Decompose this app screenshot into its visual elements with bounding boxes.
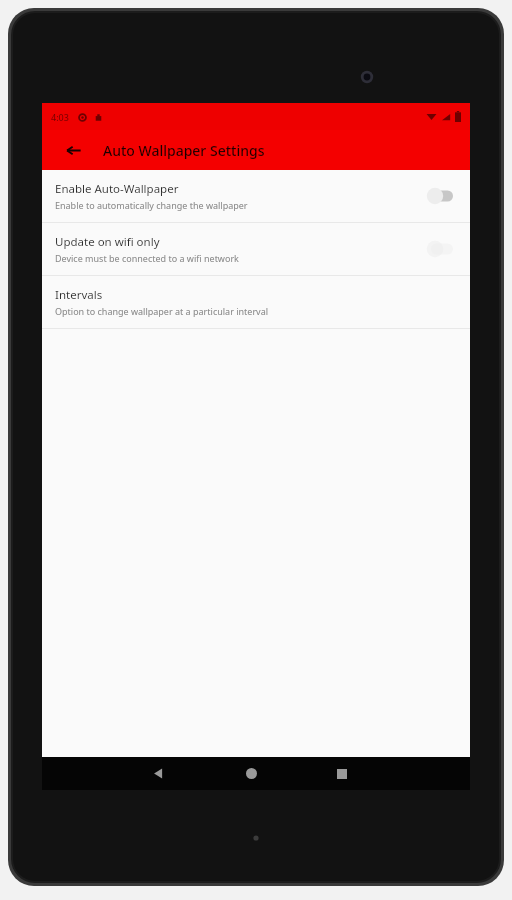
- button[interactable]: Update on wifi only: [42, 223, 470, 275]
- button[interactable]: Toggle Enable Auto-Wallpaper: [423, 181, 457, 211]
- button[interactable]: Navigate up: [57, 134, 89, 166]
- staticText: Enable to automatically change the wallp…: [55, 199, 248, 211]
- staticText: Option to change wallpaper at a particul…: [55, 305, 269, 317]
- staticText: Update on wifi only: [55, 234, 160, 250]
- button[interactable]: Toggle Update on wifi only: [423, 234, 457, 264]
- button[interactable]: Recent apps: [322, 757, 362, 790]
- button[interactable]: Enable Auto-Wallpaper: [42, 170, 470, 222]
- button[interactable]: Intervals: [42, 276, 470, 328]
- staticText: Intervals: [55, 287, 103, 303]
- staticText: Auto Wallpaper Settings: [103, 141, 265, 160]
- staticText: Enable Auto-Wallpaper: [55, 181, 179, 197]
- staticText: Device must be connected to a wifi netwo…: [55, 252, 239, 264]
- button[interactable]: Home: [231, 757, 271, 790]
- staticText: 4:03: [51, 111, 69, 123]
- button[interactable]: Back: [138, 757, 178, 790]
